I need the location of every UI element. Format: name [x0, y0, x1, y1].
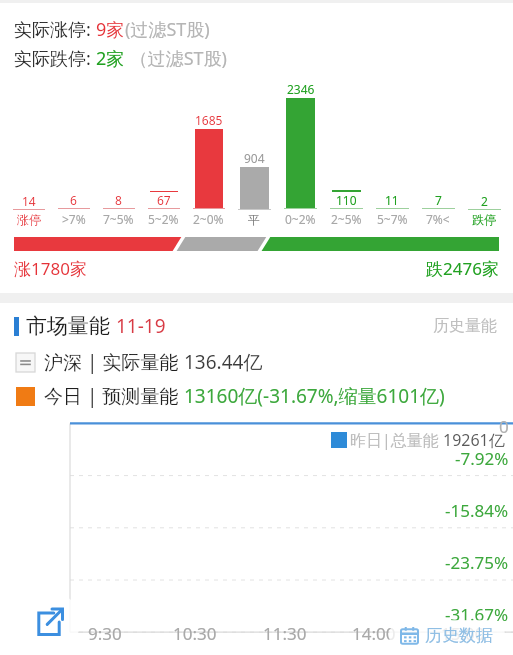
staticText: 今日 | 预测量能	[44, 383, 184, 409]
staticText: 13160亿(-31.67%,缩量6101亿)	[184, 383, 445, 409]
staticText: 2346	[287, 81, 315, 97]
staticText: 9:30	[88, 622, 122, 645]
staticText: -23.75%	[445, 551, 509, 574]
staticText: 110	[336, 192, 357, 208]
staticText: 15:00	[441, 622, 485, 645]
staticText: 历史数据	[425, 625, 493, 646]
staticText: 涨停	[17, 212, 41, 227]
staticText: 2~0%	[193, 211, 224, 227]
staticText: 涨1780家	[14, 257, 87, 280]
staticText: 实际涨停:	[14, 17, 96, 42]
staticText: 历史量能	[433, 316, 497, 336]
staticText: -15.84%	[445, 499, 509, 522]
staticText: (过滤ST股)	[125, 17, 210, 42]
staticText: 11-19	[116, 313, 166, 339]
staticText: 7	[435, 192, 442, 208]
staticText: 8	[115, 192, 122, 208]
staticText: 10:30	[173, 622, 217, 645]
staticText: 沪深 | 实际量能	[44, 349, 184, 375]
staticText: 市场量能	[26, 313, 110, 339]
staticText: 6	[70, 192, 77, 208]
staticText: 实际跌停:	[14, 46, 96, 71]
staticText: 9家	[96, 17, 125, 42]
staticText: 67	[157, 192, 171, 208]
staticText: 904	[244, 150, 265, 166]
staticText: 14	[22, 193, 36, 209]
staticText: 0	[499, 415, 509, 438]
staticText: 5~2%	[148, 211, 179, 227]
staticText: 跌停	[472, 212, 496, 227]
staticText: 11	[385, 192, 399, 208]
button[interactable]: 分享	[18, 591, 80, 653]
staticText: -31.67%	[445, 603, 509, 626]
staticText: 19261亿	[443, 429, 505, 451]
button[interactable]: 历史数据	[389, 620, 505, 651]
staticText: 0~2%	[285, 211, 316, 227]
staticText: 昨日|总量能	[350, 429, 443, 451]
staticText: 5~7%	[377, 211, 408, 227]
staticText: 7%<	[426, 211, 450, 227]
staticText: 14:00	[352, 622, 396, 645]
staticText: >7%	[62, 211, 86, 227]
staticText: 2	[481, 193, 488, 209]
staticText: 2~5%	[331, 211, 362, 227]
staticText: 2家	[96, 46, 125, 71]
staticText: -7.92%	[455, 447, 509, 470]
staticText: 136.44亿	[184, 349, 263, 375]
staticText: 11:30	[263, 622, 307, 645]
staticText: （过滤ST股)	[125, 46, 227, 71]
staticText: 7~5%	[103, 211, 134, 227]
button[interactable]: 历史量能	[431, 314, 499, 338]
staticText: 跌2476家	[426, 257, 499, 280]
staticText: 1685	[195, 112, 223, 128]
staticText: 平	[248, 212, 260, 227]
